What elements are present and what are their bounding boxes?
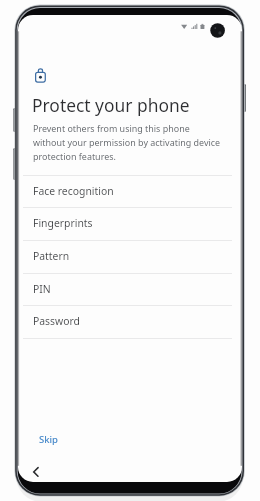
staticText: Prevent others from using this phone wit…	[33, 122, 221, 162]
button[interactable]: Password	[18, 305, 242, 338]
staticText: Protect your phone	[32, 93, 190, 117]
button[interactable]: Pattern	[18, 240, 242, 273]
staticText: PIN	[33, 282, 51, 296]
staticText: Face recognition	[33, 184, 114, 198]
staticText: Skip	[39, 433, 58, 446]
staticText: Pattern	[33, 249, 70, 263]
staticText: Password	[33, 314, 80, 328]
staticText: Fingerprints	[33, 216, 93, 230]
button[interactable]: Back	[28, 462, 44, 478]
button[interactable]: Fingerprints	[18, 207, 242, 240]
button[interactable]: Skip	[32, 428, 51, 441]
button[interactable]: PIN	[18, 273, 242, 306]
button[interactable]: Face recognition	[18, 175, 242, 208]
